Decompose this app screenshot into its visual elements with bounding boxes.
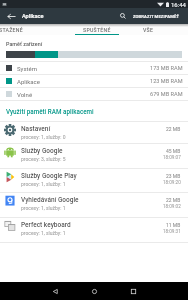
staticText: 23 MB [166,173,181,179]
staticText: Volné [17,91,33,98]
staticText: 11 MB [166,222,181,228]
staticText: 679 MB RAM [150,91,183,98]
staticText: procesy: 1, služby: 0 [21,134,66,140]
button[interactable]: ZOBRAZIT MEZIPAMĚŤ [129,8,188,24]
staticText: VŠE [143,27,154,33]
staticText: Systém [17,65,37,72]
staticText: Služby Google Play [21,172,77,180]
staticText: 123 MB RAM [150,78,183,85]
staticText: 22 MB [166,197,181,203]
button[interactable]: Recent apps [114,282,153,300]
button[interactable]: Nastavení [0,122,188,144]
button[interactable]: Home [75,282,114,300]
button[interactable]: Perfect keyboard [0,218,188,243]
staticText: STAŽENÉ [0,27,23,33]
staticText: Využití paměti RAM aplikacemi [6,108,94,115]
staticText: ZOBRAZIT MEZIPAMĚŤ [133,14,180,19]
button[interactable]: STAŽENÉ [0,24,54,35]
button[interactable]: Služby Google [0,144,188,169]
staticText: SPUŠTĚNÉ [83,27,111,33]
staticText: procesy: 1, služby: 1 [21,230,66,236]
staticText: 18:09:02 [163,204,181,209]
staticText: Služby Google [21,147,63,155]
staticText: Nastavení [21,125,51,133]
button[interactable]: Vyhledávání Google [0,193,188,218]
staticText: Vyhledávání Google [21,196,79,204]
staticText: 18:09:31 [163,229,181,234]
staticText: Paměť zařízení [6,41,43,47]
staticText: 45 MB [166,148,181,154]
button[interactable]: Služby Google Play [0,169,188,193]
button[interactable]: Search [116,8,129,24]
staticText: 173 MB RAM [150,65,183,72]
staticText: procesy: 1, služby: 1 [21,205,66,211]
staticText: 18:09:20 [163,180,181,185]
staticText: 18:09:07 [163,155,181,160]
staticText: Aplikace [17,78,40,85]
button[interactable]: Back [0,8,22,24]
staticText: Perfect keyboard [21,221,71,229]
staticText: procesy: 1, služby: 1 [21,181,66,187]
staticText: 22 MB [166,126,181,132]
button[interactable]: Back [36,282,75,300]
staticText: procesy: 3, služby: 5 [21,156,66,162]
staticText: 16:44 [171,1,186,8]
button[interactable]: SPUŠTĚNÉ [54,24,140,35]
staticText: Aplikace [22,13,44,20]
button[interactable]: VŠE [140,24,156,35]
